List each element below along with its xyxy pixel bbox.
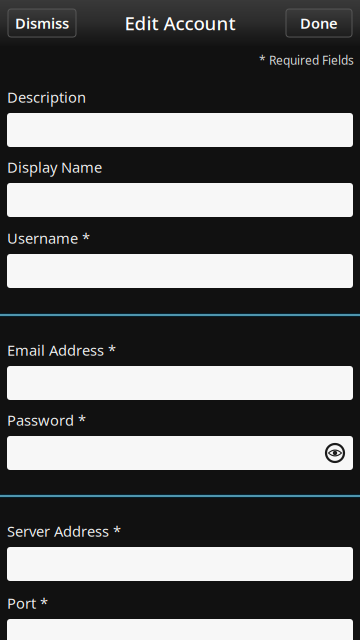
button[interactable]: Done bbox=[286, 9, 352, 37]
staticText: Display Name bbox=[7, 157, 102, 177]
button[interactable]: Dismiss bbox=[8, 9, 76, 37]
staticText: Dismiss bbox=[15, 13, 69, 33]
button[interactable] bbox=[7, 113, 353, 147]
button[interactable] bbox=[7, 619, 353, 640]
staticText: Server Address * bbox=[7, 521, 121, 541]
staticText: * Required Fields bbox=[259, 52, 354, 68]
button[interactable] bbox=[7, 436, 353, 470]
staticText: Password * bbox=[7, 410, 86, 430]
button[interactable] bbox=[7, 254, 353, 288]
staticText: Username * bbox=[7, 228, 90, 248]
staticText: Description bbox=[7, 87, 86, 107]
staticText: Edit Account bbox=[124, 11, 235, 35]
button[interactable] bbox=[7, 183, 353, 217]
staticText: Done bbox=[300, 13, 338, 33]
button[interactable] bbox=[7, 547, 353, 581]
staticText: Email Address * bbox=[7, 340, 116, 360]
button[interactable] bbox=[7, 366, 353, 400]
staticText: Port * bbox=[7, 593, 48, 613]
